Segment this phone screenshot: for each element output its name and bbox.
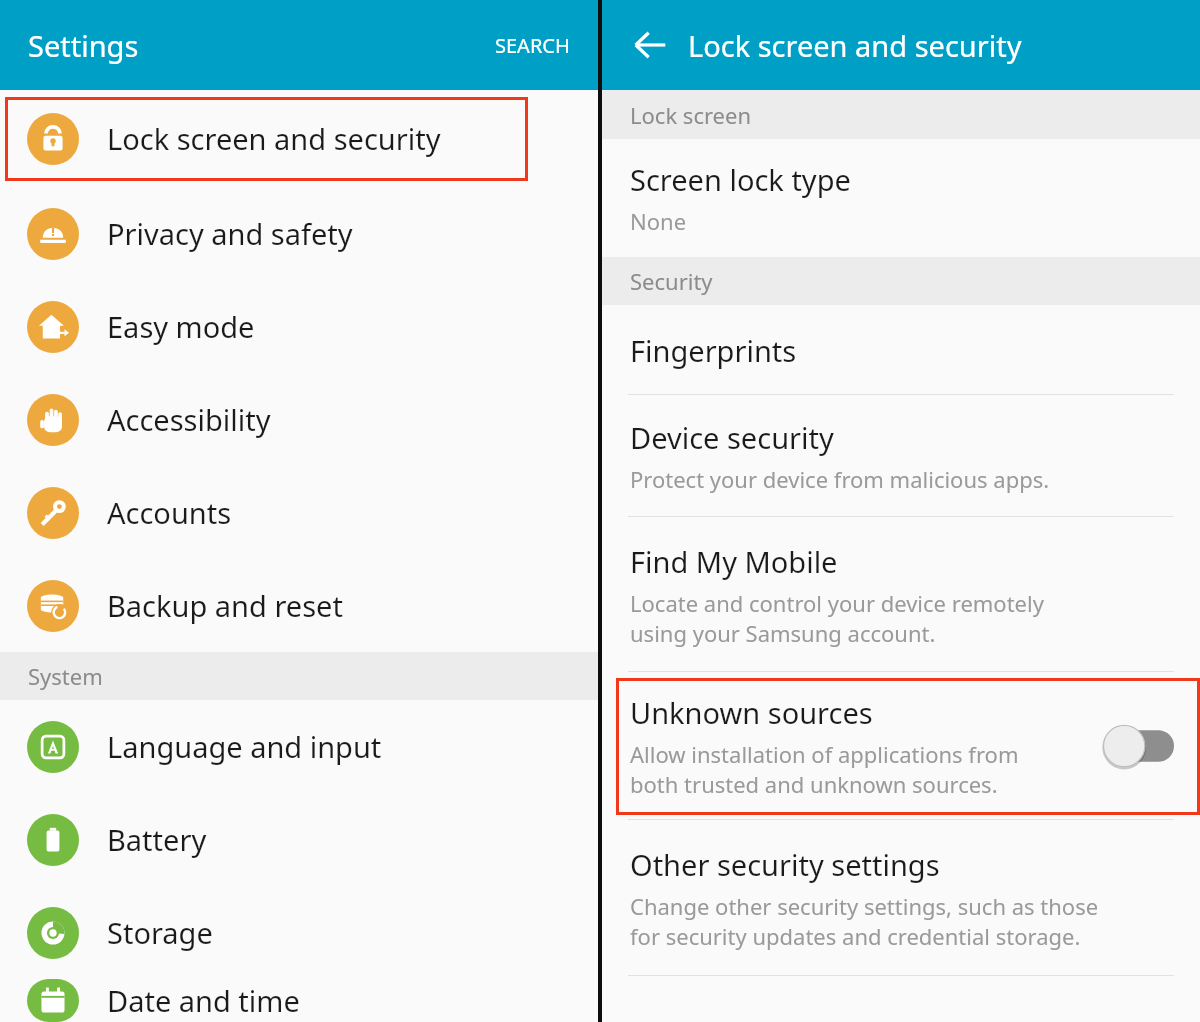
staticText: Language and input xyxy=(107,727,382,766)
staticText: Allow installation of applications from … xyxy=(630,739,1019,799)
staticText: Security xyxy=(630,266,713,296)
staticText: Device security xyxy=(630,418,834,457)
staticText: Unknown sources xyxy=(630,693,873,732)
staticText: Storage xyxy=(107,913,213,952)
staticText: Lock screen xyxy=(630,100,752,130)
staticText: Other security settings xyxy=(630,845,940,884)
staticText: Accessibility xyxy=(107,400,271,439)
button[interactable]: SEARCH xyxy=(489,26,576,65)
staticText: Protect your device from malicious apps. xyxy=(630,464,1050,494)
button[interactable]: Other security settings xyxy=(602,820,1200,976)
staticText: Screen lock type xyxy=(630,160,851,199)
button[interactable]: Unknown sources xyxy=(602,672,1200,820)
button[interactable]: Screen lock type xyxy=(602,139,1200,257)
staticText: Easy mode xyxy=(107,307,255,346)
staticText: Find My Mobile xyxy=(630,542,838,581)
button[interactable]: Lock screen and security xyxy=(0,90,598,187)
button[interactable]: Privacy and safety xyxy=(0,187,598,280)
staticText: Date and time xyxy=(107,981,300,1020)
button[interactable]: Storage xyxy=(0,886,598,979)
button[interactable]: Accessibility xyxy=(0,373,598,466)
button[interactable]: Easy mode xyxy=(0,280,598,373)
button[interactable]: Date and time xyxy=(0,979,598,1022)
staticText: Backup and reset xyxy=(107,586,343,625)
button[interactable]: Language and input xyxy=(0,700,598,793)
staticText: None xyxy=(630,206,687,236)
button[interactable]: Accounts xyxy=(0,466,598,559)
button[interactable]: Device security xyxy=(602,395,1200,517)
staticText: Privacy and safety xyxy=(107,214,353,253)
button[interactable]: Back xyxy=(626,21,674,69)
staticText: Accounts xyxy=(107,493,232,532)
staticText: Change other security settings, such as … xyxy=(630,891,1099,951)
staticText: Locate and control your device remotely … xyxy=(630,588,1044,648)
staticText: Settings xyxy=(28,26,139,65)
staticText: Battery xyxy=(107,820,207,859)
staticText: Lock screen and security xyxy=(688,26,1022,65)
staticText: SEARCH xyxy=(495,32,570,59)
button[interactable]: Battery xyxy=(0,793,598,886)
staticText: System xyxy=(28,661,103,691)
button[interactable]: Fingerprints xyxy=(602,305,1200,395)
button[interactable]: Find My Mobile xyxy=(602,517,1200,672)
staticText: Lock screen and security xyxy=(107,119,441,158)
button[interactable]: Unknown sources toggle xyxy=(1102,724,1174,768)
button[interactable]: Backup and reset xyxy=(0,559,598,652)
staticText: Fingerprints xyxy=(630,331,797,370)
